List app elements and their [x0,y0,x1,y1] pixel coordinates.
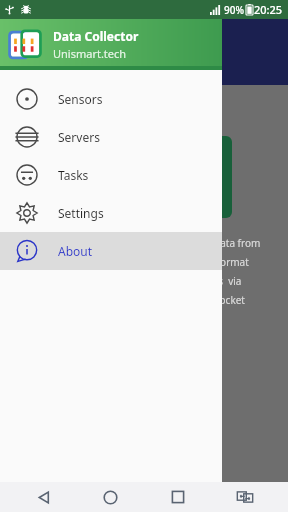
button[interactable]: Tasks [0,156,222,194]
button[interactable]: Sensors [0,80,222,118]
staticText: Tasks [58,167,89,183]
button[interactable]: Home [86,482,134,512]
staticText: ... format [206,255,249,269]
button[interactable]: Settings [0,194,222,232]
staticText: ...Socket [206,293,245,307]
button[interactable]: Back [19,482,67,512]
button[interactable]: Recent apps [154,482,202,512]
staticText: Data Collector [53,28,139,44]
button[interactable]: About [0,232,222,270]
button[interactable]: Servers [0,118,222,156]
staticText: 20:25 [254,2,283,17]
staticText: Settings [58,205,104,221]
staticText: About [58,243,93,259]
staticText: 90% [224,3,244,17]
staticText: ...data from [206,236,261,250]
staticText: ...rs via [206,274,242,288]
staticText: Servers [58,129,100,145]
staticText: Sensors [58,91,103,107]
staticText: Unismart.tech [53,46,127,61]
button[interactable]: Rotate screen [221,482,269,512]
